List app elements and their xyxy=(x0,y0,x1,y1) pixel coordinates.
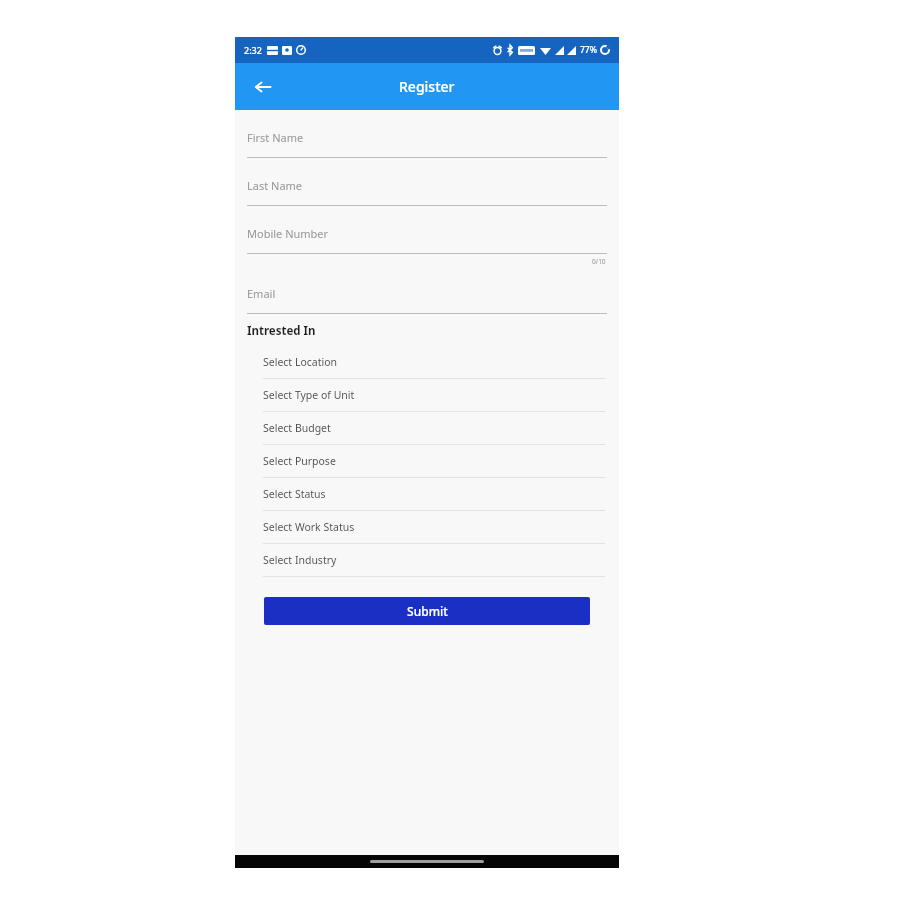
staticText: Intrested In xyxy=(247,323,316,339)
button[interactable]: Back xyxy=(247,71,279,103)
staticText: Register xyxy=(399,77,455,96)
button[interactable]: Select Work Status xyxy=(263,511,605,544)
staticText: Select Location xyxy=(263,355,338,369)
staticText: Mobile Number xyxy=(247,226,329,241)
button[interactable]: Select Type of Unit xyxy=(263,379,605,412)
button[interactable]: First Name xyxy=(247,130,607,158)
button[interactable]: Select Status xyxy=(263,478,605,511)
button[interactable]: Select Industry xyxy=(263,544,605,577)
staticText: 0/10 xyxy=(592,257,606,266)
staticText: Select Purpose xyxy=(263,454,336,468)
staticText: Select Work Status xyxy=(263,520,355,534)
staticText: Select Budget xyxy=(263,421,331,435)
button[interactable]: Select Budget xyxy=(263,412,605,445)
staticText: First Name xyxy=(247,130,304,145)
staticText: Select Status xyxy=(263,487,326,501)
staticText: Last Name xyxy=(247,178,303,193)
staticText: Email xyxy=(247,286,276,301)
staticText: Select Type of Unit xyxy=(263,388,355,402)
staticText: 77% xyxy=(580,44,597,56)
button[interactable]: Last Name xyxy=(247,178,607,206)
button[interactable]: Submit xyxy=(264,597,590,625)
staticText: Select Industry xyxy=(263,553,337,567)
staticText: 2:32 xyxy=(244,44,262,56)
button[interactable]: Select Purpose xyxy=(263,445,605,478)
button[interactable]: Email xyxy=(247,286,607,314)
staticText: Submit xyxy=(407,603,448,619)
button[interactable]: Mobile Number xyxy=(247,226,607,254)
button[interactable]: Select Location xyxy=(263,346,605,379)
